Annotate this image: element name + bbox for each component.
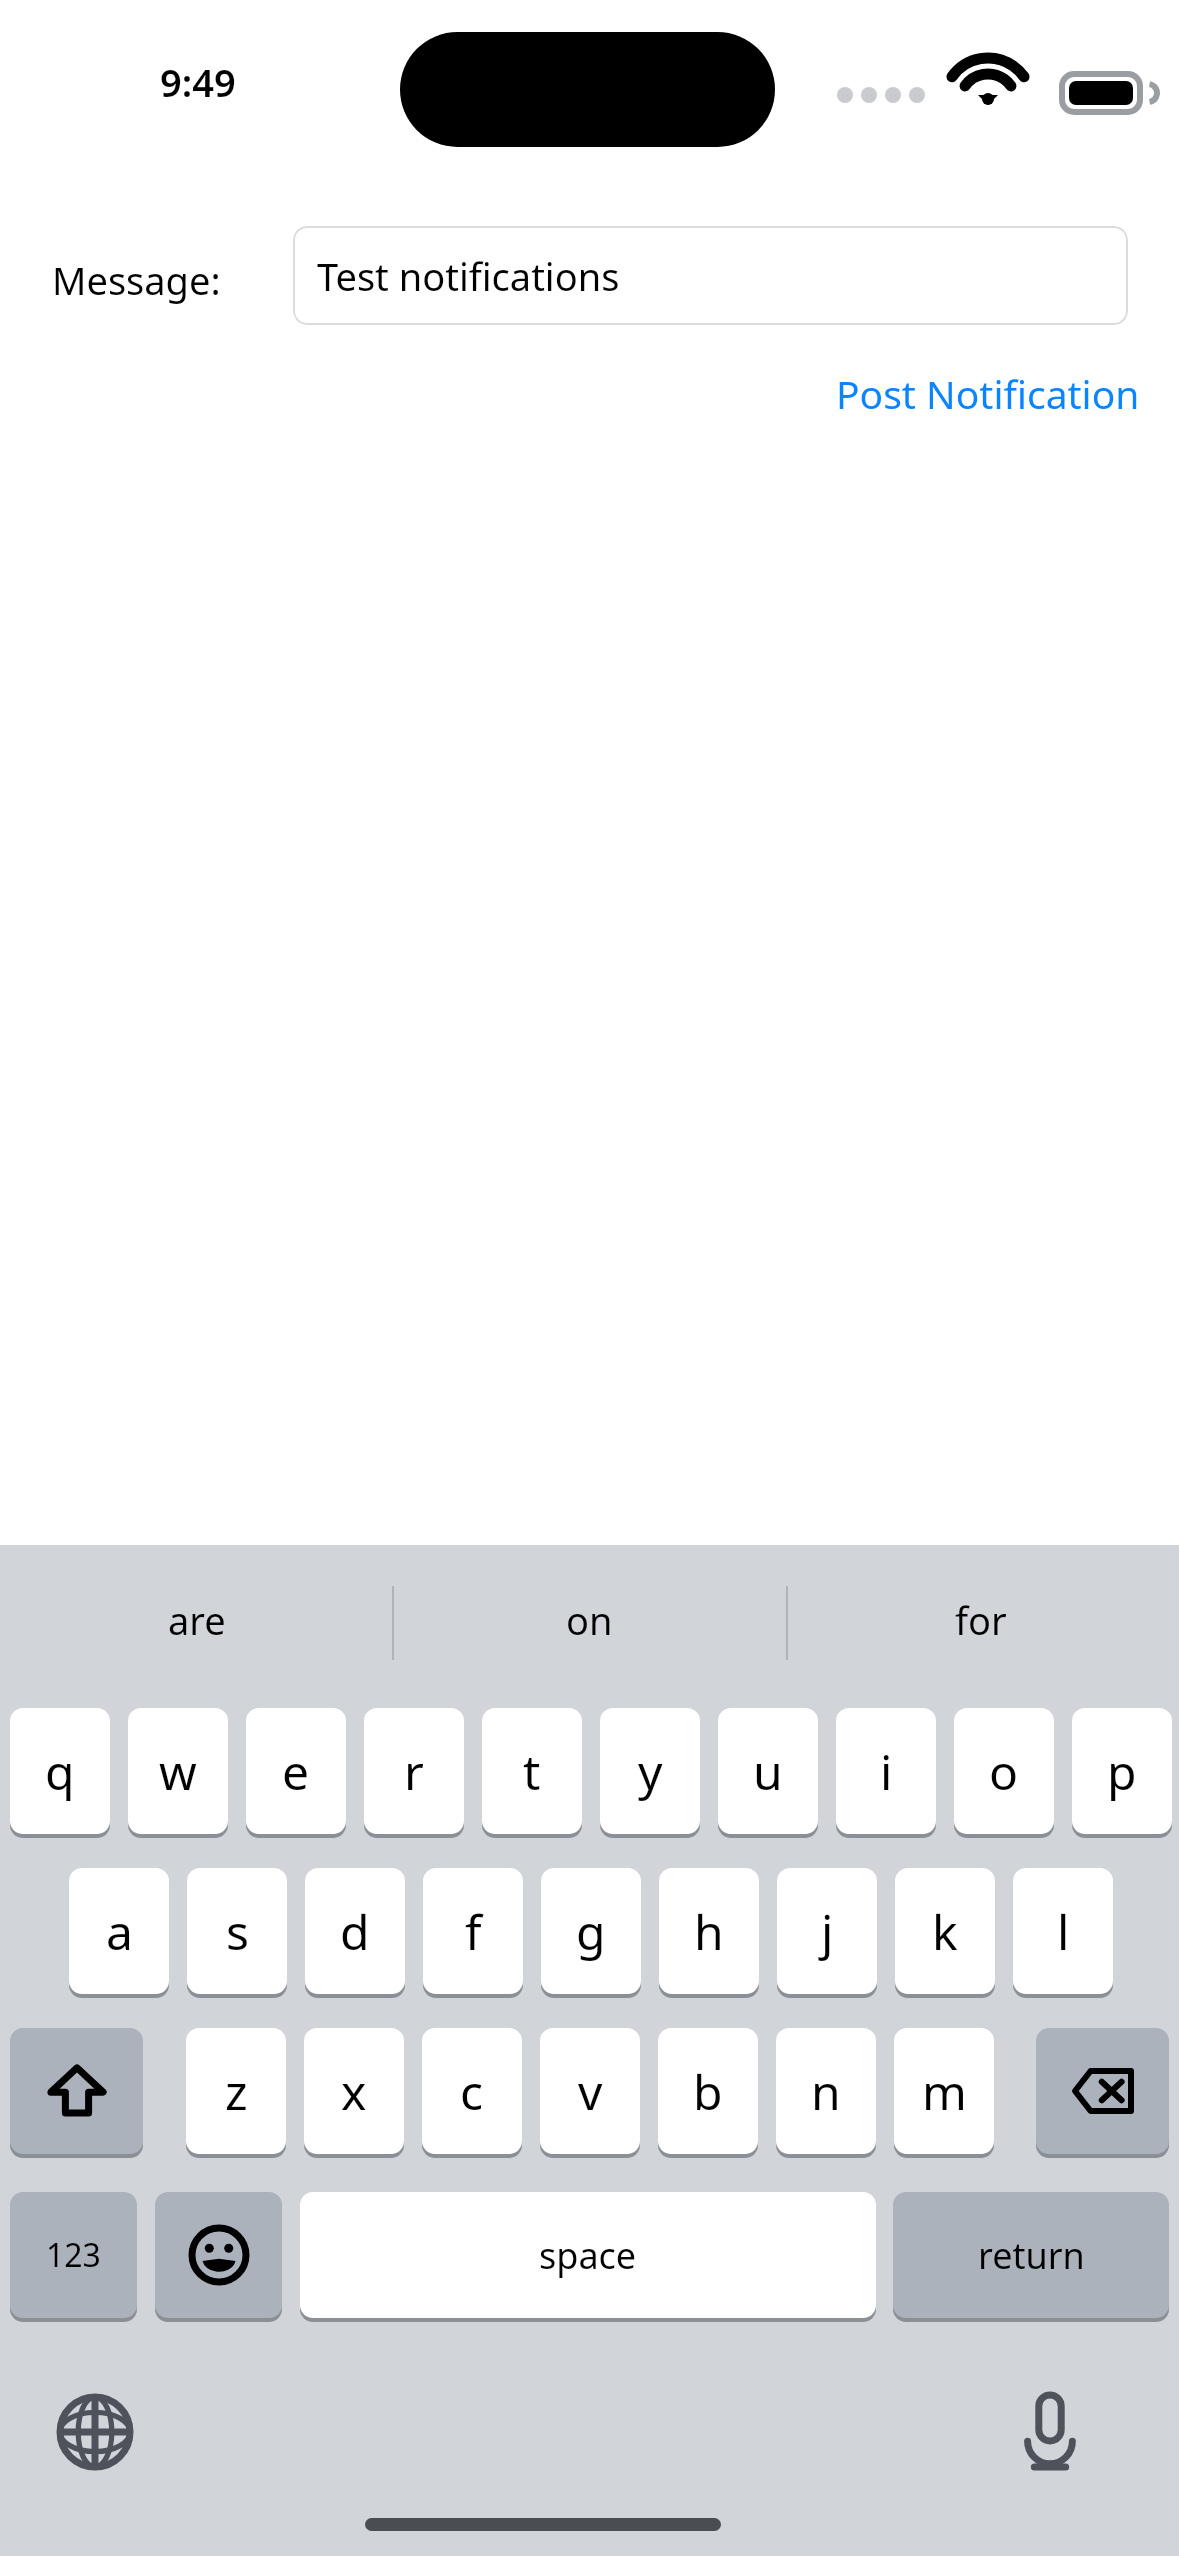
- staticText: b: [693, 2059, 723, 2124]
- staticText: space: [539, 2231, 637, 2280]
- staticText: a: [106, 1899, 133, 1964]
- staticText: j: [821, 1899, 834, 1964]
- button[interactable]: u: [718, 1708, 818, 1834]
- staticText: s: [226, 1899, 249, 1964]
- staticText: e: [282, 1739, 310, 1804]
- button[interactable]: n: [776, 2028, 876, 2154]
- button[interactable]: Dictation: [994, 2376, 1106, 2488]
- button[interactable]: return: [893, 2192, 1169, 2318]
- staticText: n: [811, 2059, 841, 2124]
- button[interactable]: Next keyboard: [39, 2376, 151, 2488]
- button[interactable]: b: [658, 2028, 758, 2154]
- button[interactable]: q: [10, 1708, 110, 1834]
- staticText: for: [955, 1594, 1007, 1646]
- button[interactable]: space: [300, 2192, 876, 2318]
- staticText: y: [638, 1739, 663, 1804]
- staticText: w: [159, 1739, 197, 1804]
- staticText: Test notifications: [317, 250, 620, 302]
- staticText: Post Notification: [836, 367, 1140, 420]
- staticText: t: [523, 1739, 541, 1804]
- staticText: on: [566, 1594, 613, 1646]
- button[interactable]: y: [600, 1708, 700, 1834]
- button[interactable]: w: [128, 1708, 228, 1834]
- staticText: l: [1057, 1899, 1070, 1964]
- button[interactable]: v: [540, 2028, 640, 2154]
- button[interactable]: h: [659, 1868, 759, 1994]
- button[interactable]: Emoji: [155, 2192, 282, 2318]
- staticText: return: [978, 2231, 1085, 2280]
- staticText: are: [168, 1594, 226, 1646]
- button[interactable]: g: [541, 1868, 641, 1994]
- staticText: Message:: [52, 254, 221, 306]
- staticText: p: [1107, 1739, 1137, 1804]
- button[interactable]: Post Notification: [740, 358, 1140, 428]
- button[interactable]: p: [1072, 1708, 1172, 1834]
- button[interactable]: o: [954, 1708, 1054, 1834]
- button[interactable]: for: [821, 1570, 1141, 1670]
- staticText: g: [576, 1899, 606, 1964]
- button[interactable]: Shift: [10, 2028, 143, 2154]
- staticText: q: [45, 1739, 75, 1804]
- button[interactable]: j: [777, 1868, 877, 1994]
- button[interactable]: d: [305, 1868, 405, 1994]
- button[interactable]: c: [422, 2028, 522, 2154]
- staticText: 9:49: [160, 56, 236, 102]
- staticText: d: [340, 1899, 370, 1964]
- staticText: u: [753, 1739, 783, 1804]
- staticText: z: [225, 2059, 248, 2124]
- button[interactable]: k: [895, 1868, 995, 1994]
- button[interactable]: on: [429, 1570, 749, 1670]
- staticText: 123: [46, 2233, 101, 2277]
- button[interactable]: a: [69, 1868, 169, 1994]
- staticText: c: [460, 2059, 484, 2124]
- button[interactable]: t: [482, 1708, 582, 1834]
- staticText: m: [922, 2059, 967, 2124]
- button[interactable]: x: [304, 2028, 404, 2154]
- staticText: h: [694, 1899, 724, 1964]
- staticText: i: [880, 1739, 893, 1804]
- staticText: v: [578, 2059, 603, 2124]
- button[interactable]: i: [836, 1708, 936, 1834]
- staticText: r: [404, 1739, 424, 1804]
- button[interactable]: z: [186, 2028, 286, 2154]
- staticText: x: [341, 2059, 367, 2124]
- button[interactable]: Test notifications: [293, 226, 1128, 325]
- button[interactable]: are: [37, 1570, 357, 1670]
- button[interactable]: l: [1013, 1868, 1113, 1994]
- button[interactable]: 123: [10, 2192, 137, 2318]
- button[interactable]: e: [246, 1708, 346, 1834]
- button[interactable]: Backspace: [1036, 2028, 1169, 2154]
- staticText: k: [932, 1899, 958, 1964]
- button[interactable]: m: [894, 2028, 994, 2154]
- button[interactable]: r: [364, 1708, 464, 1834]
- staticText: f: [465, 1899, 482, 1964]
- button[interactable]: s: [187, 1868, 287, 1994]
- button[interactable]: f: [423, 1868, 523, 1994]
- staticText: o: [989, 1739, 1019, 1804]
